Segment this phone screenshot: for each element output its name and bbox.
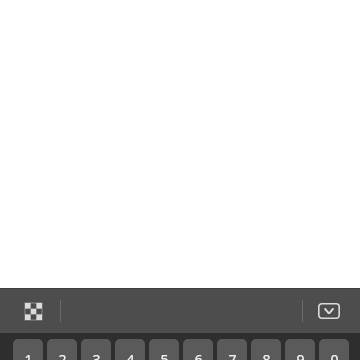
button[interactable]: 0 — [319, 339, 349, 360]
staticText: 8 — [262, 350, 271, 360]
button[interactable]: 9 — [285, 339, 315, 360]
staticText: 3 — [92, 350, 101, 360]
button[interactable]: 2 — [47, 339, 77, 360]
button[interactable]: 7 — [217, 339, 247, 360]
button[interactable]: 3 — [81, 339, 111, 360]
staticText: 4 — [126, 350, 135, 360]
staticText: 5 — [160, 350, 169, 360]
staticText: 1 — [24, 350, 33, 360]
staticText: 7 — [228, 350, 237, 360]
button[interactable]: 5 — [149, 339, 179, 360]
staticText: 9 — [296, 350, 305, 360]
staticText: 2 — [58, 350, 67, 360]
button[interactable]: 1 — [13, 339, 43, 360]
button[interactable]: Hide keyboard — [313, 298, 344, 324]
staticText: 6 — [194, 350, 203, 360]
button[interactable]: 8 — [251, 339, 281, 360]
button[interactable]: 6 — [183, 339, 213, 360]
staticText: 0 — [330, 350, 339, 360]
button[interactable]: 4 — [115, 339, 145, 360]
button[interactable]: Stickers — [18, 296, 48, 326]
